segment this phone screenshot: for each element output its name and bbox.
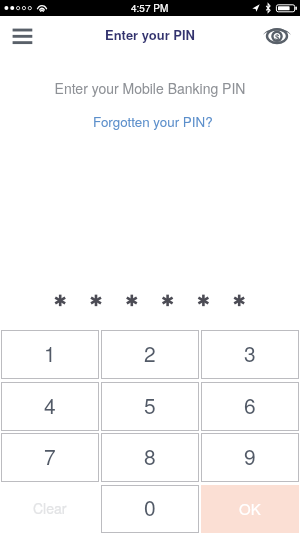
button[interactable]: 0	[101, 485, 199, 533]
staticText: Clear	[33, 498, 67, 518]
staticText: 4	[44, 390, 56, 420]
staticText: Enter your PIN	[105, 25, 195, 44]
button[interactable]: 7	[1, 433, 99, 482]
staticText: 8	[144, 441, 156, 471]
staticText: 5	[144, 390, 156, 420]
staticText: 1	[44, 338, 56, 368]
button[interactable]: 6	[201, 382, 299, 431]
staticText: 7	[44, 441, 56, 471]
staticText: 6	[244, 390, 256, 420]
button[interactable]: 5	[101, 382, 199, 431]
button[interactable]: 9	[201, 433, 299, 482]
button[interactable]: 2	[101, 330, 199, 379]
button[interactable]: Forgotten your PIN?	[87, 109, 219, 134]
staticText: 4:57 PM	[131, 1, 169, 15]
button[interactable]: 4	[1, 382, 99, 431]
button[interactable]: Show PIN	[253, 16, 300, 54]
staticText: 3	[244, 338, 256, 368]
button[interactable]: OK	[201, 485, 299, 533]
staticText: Enter your Mobile Banking PIN	[0, 78, 300, 98]
button[interactable]: 8	[101, 433, 199, 482]
button[interactable]: Clear	[1, 485, 99, 533]
button[interactable]: 3	[201, 330, 299, 379]
button[interactable]: 1	[1, 330, 99, 379]
staticText: 9	[244, 441, 256, 471]
staticText: OK	[239, 498, 261, 519]
staticText: $	[275, 31, 280, 42]
staticText: 2	[144, 338, 156, 368]
button[interactable]: Menu	[0, 16, 44, 54]
staticText: 0	[144, 492, 156, 522]
